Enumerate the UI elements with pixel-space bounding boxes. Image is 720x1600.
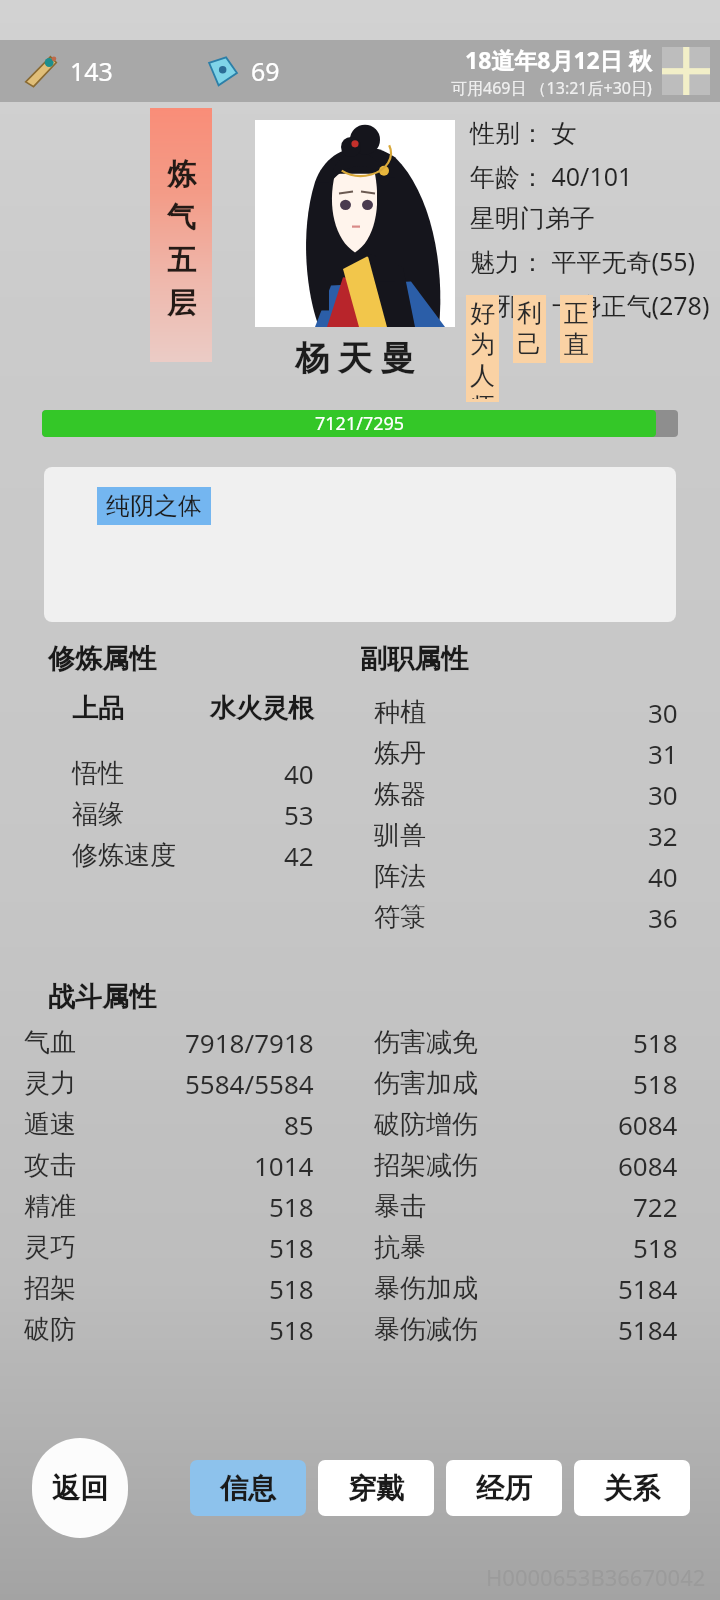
staticText: 85 (284, 1107, 314, 1142)
button[interactable]: Character portrait (255, 120, 455, 327)
button[interactable]: 修炼速度 (48, 835, 360, 876)
staticText: 驯兽 (374, 819, 426, 852)
staticText: 7121/7295 (315, 411, 405, 436)
button[interactable]: 灵力 (0, 1063, 360, 1104)
staticText: 阵法 (374, 860, 426, 893)
staticText: 年龄： 40/101 (470, 159, 633, 193)
staticText: 经历 (476, 1471, 532, 1506)
button[interactable]: 阵法 (360, 856, 720, 897)
staticText: 518 (269, 1230, 314, 1265)
staticText: 气血 (24, 1026, 76, 1059)
staticText: H0000653B36670042 (486, 1562, 706, 1592)
button[interactable]: 种植 (360, 692, 720, 733)
button[interactable]: 暴伤减伤 (360, 1309, 720, 1350)
staticText: 18道年8月12日 秋 (465, 44, 652, 75)
button[interactable]: 143 (10, 50, 127, 92)
staticText: 暴伤加成 (374, 1272, 478, 1305)
staticText: 53 (284, 797, 314, 832)
button[interactable]: 破防增伤 (360, 1104, 720, 1145)
button[interactable]: 利 (513, 295, 546, 363)
button[interactable]: 灵巧 (0, 1227, 360, 1268)
staticText: 518 (269, 1189, 314, 1224)
staticText: 直 (564, 329, 589, 360)
staticText: 符箓 (374, 901, 426, 934)
staticText: 6084 (618, 1148, 678, 1183)
staticText: 518 (633, 1066, 678, 1101)
button[interactable]: 69 (195, 50, 290, 92)
button[interactable]: 好 (466, 295, 499, 402)
staticText: 好 (470, 298, 495, 329)
button[interactable]: 7121/7295 (42, 410, 678, 437)
staticText: 暴击 (374, 1190, 426, 1223)
button[interactable]: 破防 (0, 1309, 360, 1350)
button[interactable]: Menu (662, 47, 710, 95)
button[interactable]: 招架减伤 (360, 1145, 720, 1186)
staticText: 暴伤减伤 (374, 1313, 478, 1346)
staticText: 灵巧 (24, 1231, 76, 1264)
button[interactable]: 遁速 (0, 1104, 360, 1145)
staticText: 灵力 (24, 1067, 76, 1100)
button[interactable]: 返回 (32, 1438, 128, 1538)
button[interactable]: 正 (560, 295, 593, 363)
button[interactable]: 气血 (0, 1022, 360, 1063)
staticText: 招架减伤 (374, 1149, 478, 1182)
button[interactable]: 暴伤加成 (360, 1268, 720, 1309)
button[interactable]: 驯兽 (360, 815, 720, 856)
staticText: 杨 天 曼 (295, 334, 415, 380)
button[interactable]: 攻击 (0, 1145, 360, 1186)
staticText: 招架 (24, 1272, 76, 1305)
button[interactable]: 18道年8月12日 秋 (451, 44, 652, 99)
staticText: 遁速 (24, 1108, 76, 1141)
staticText: 7918/7918 (185, 1025, 314, 1060)
staticText: 纯阴之体 (106, 491, 202, 521)
button[interactable]: 悟性 (48, 753, 360, 794)
button[interactable]: 精准 (0, 1186, 360, 1227)
staticText: 5584/5584 (185, 1066, 314, 1101)
staticText: 1014 (254, 1148, 314, 1183)
staticText: 师 (470, 391, 495, 399)
staticText: 精准 (24, 1190, 76, 1223)
staticText: 722 (633, 1189, 678, 1224)
staticText: 性别： 女 (470, 115, 577, 149)
button[interactable]: 炼器 (360, 774, 720, 815)
staticText: 气 (167, 199, 196, 236)
staticText: 己 (517, 329, 542, 360)
button[interactable]: 纯阴之体 (44, 467, 676, 622)
staticText: 518 (633, 1230, 678, 1265)
button[interactable]: 经历 (446, 1460, 562, 1516)
button[interactable]: 纯阴之体 (97, 487, 211, 525)
staticText: 副职属性 (360, 642, 468, 676)
staticText: 战斗属性 (48, 980, 156, 1014)
staticText: 层 (167, 285, 196, 322)
staticText: 正 (564, 298, 589, 329)
button[interactable]: 伤害减免 (360, 1022, 720, 1063)
staticText: 69 (251, 54, 280, 88)
staticText: 上品 (72, 692, 124, 725)
staticText: 518 (633, 1025, 678, 1060)
staticText: 炼 (167, 156, 196, 193)
staticText: 为 (470, 329, 495, 360)
staticText: 魅力： 平平无奇(55) (470, 244, 696, 278)
button[interactable]: 关系 (574, 1460, 690, 1516)
button[interactable]: 伤害加成 (360, 1063, 720, 1104)
button[interactable]: 符箓 (360, 897, 720, 938)
staticText: 福缘 (72, 798, 124, 831)
button[interactable]: 穿戴 (318, 1460, 434, 1516)
staticText: 36 (648, 900, 678, 935)
staticText: 利 (517, 298, 542, 329)
staticText: 30 (648, 777, 678, 812)
button[interactable]: 招架 (0, 1268, 360, 1309)
button[interactable]: 福缘 (48, 794, 360, 835)
button[interactable]: 暴击 (360, 1186, 720, 1227)
staticText: 返回 (52, 1471, 108, 1506)
staticText: 关系 (604, 1471, 660, 1506)
staticText: 5184 (618, 1312, 678, 1347)
staticText: 破防 (24, 1313, 76, 1346)
staticText: 修炼速度 (72, 839, 176, 872)
button[interactable]: 抗暴 (360, 1227, 720, 1268)
staticText: 40 (648, 859, 678, 894)
button[interactable]: 炼丹 (360, 733, 720, 774)
staticText: 种植 (374, 696, 426, 729)
button[interactable]: 炼 (150, 108, 212, 362)
button[interactable]: 信息 (190, 1460, 306, 1516)
